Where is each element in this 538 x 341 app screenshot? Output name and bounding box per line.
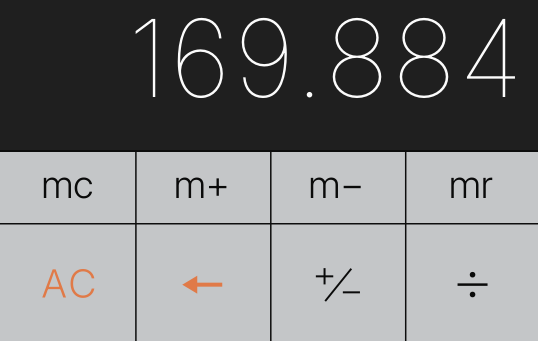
staticText: 169.884 <box>128 0 523 123</box>
button[interactable]: Toggle sign <box>269 222 403 341</box>
staticText: mr <box>449 161 493 207</box>
button[interactable]: mr <box>403 151 538 222</box>
staticText: AC <box>42 260 96 307</box>
button[interactable]: mc <box>0 151 134 222</box>
staticText: m+ <box>174 161 230 207</box>
button[interactable]: m− <box>269 151 403 222</box>
button[interactable]: Backspace <box>134 222 269 341</box>
staticText: mc <box>41 161 93 207</box>
button[interactable]: m+ <box>134 151 269 222</box>
staticText: m− <box>308 161 364 207</box>
button[interactable]: Divide <box>403 222 538 341</box>
button[interactable]: AC <box>0 222 134 341</box>
